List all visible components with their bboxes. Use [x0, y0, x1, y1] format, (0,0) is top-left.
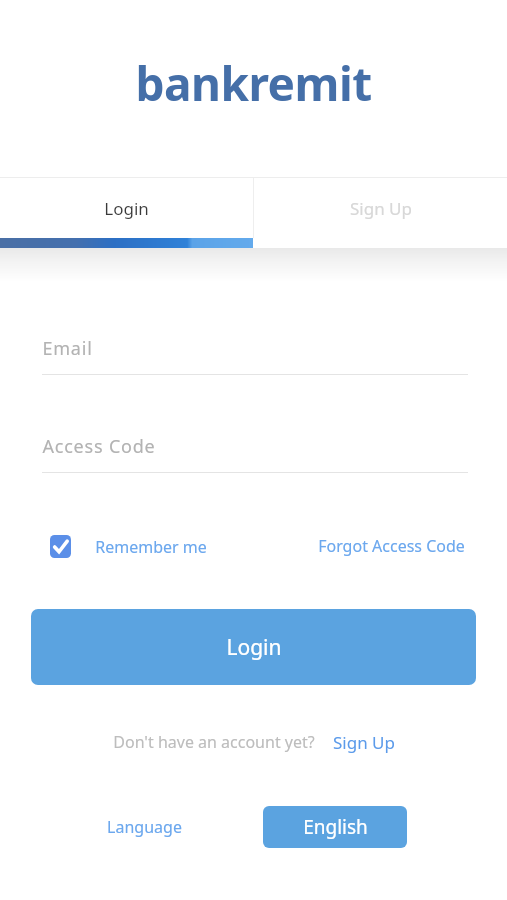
- button[interactable]: English: [263, 806, 407, 848]
- staticText: English: [303, 814, 368, 840]
- staticText: Login: [104, 197, 149, 220]
- staticText: Forgot Access Code: [318, 535, 465, 557]
- staticText: Remember me: [95, 536, 207, 558]
- staticText: Sign Up: [350, 197, 412, 220]
- button[interactable]: Login: [31, 609, 476, 685]
- button[interactable]: Email: [42, 336, 468, 375]
- staticText: Language: [107, 816, 182, 838]
- staticText: Login: [226, 633, 282, 662]
- button[interactable]: Access Code: [42, 434, 468, 473]
- staticText: bankremit: [135, 52, 372, 115]
- button[interactable]: Sign Up: [333, 731, 395, 754]
- button[interactable]: Remember me checkbox, checked: [50, 535, 207, 558]
- other: Remember me checkbox, checked: [50, 535, 71, 558]
- staticText: Access Code: [42, 434, 156, 459]
- staticText: Email: [42, 336, 93, 361]
- staticText: Don't have an account yet?: [113, 731, 315, 753]
- button[interactable]: Sign Up: [254, 178, 507, 238]
- button[interactable]: Language: [107, 816, 182, 838]
- button[interactable]: Login: [0, 178, 253, 238]
- staticText: Sign Up: [333, 731, 395, 754]
- button[interactable]: Forgot Access Code: [318, 535, 465, 557]
